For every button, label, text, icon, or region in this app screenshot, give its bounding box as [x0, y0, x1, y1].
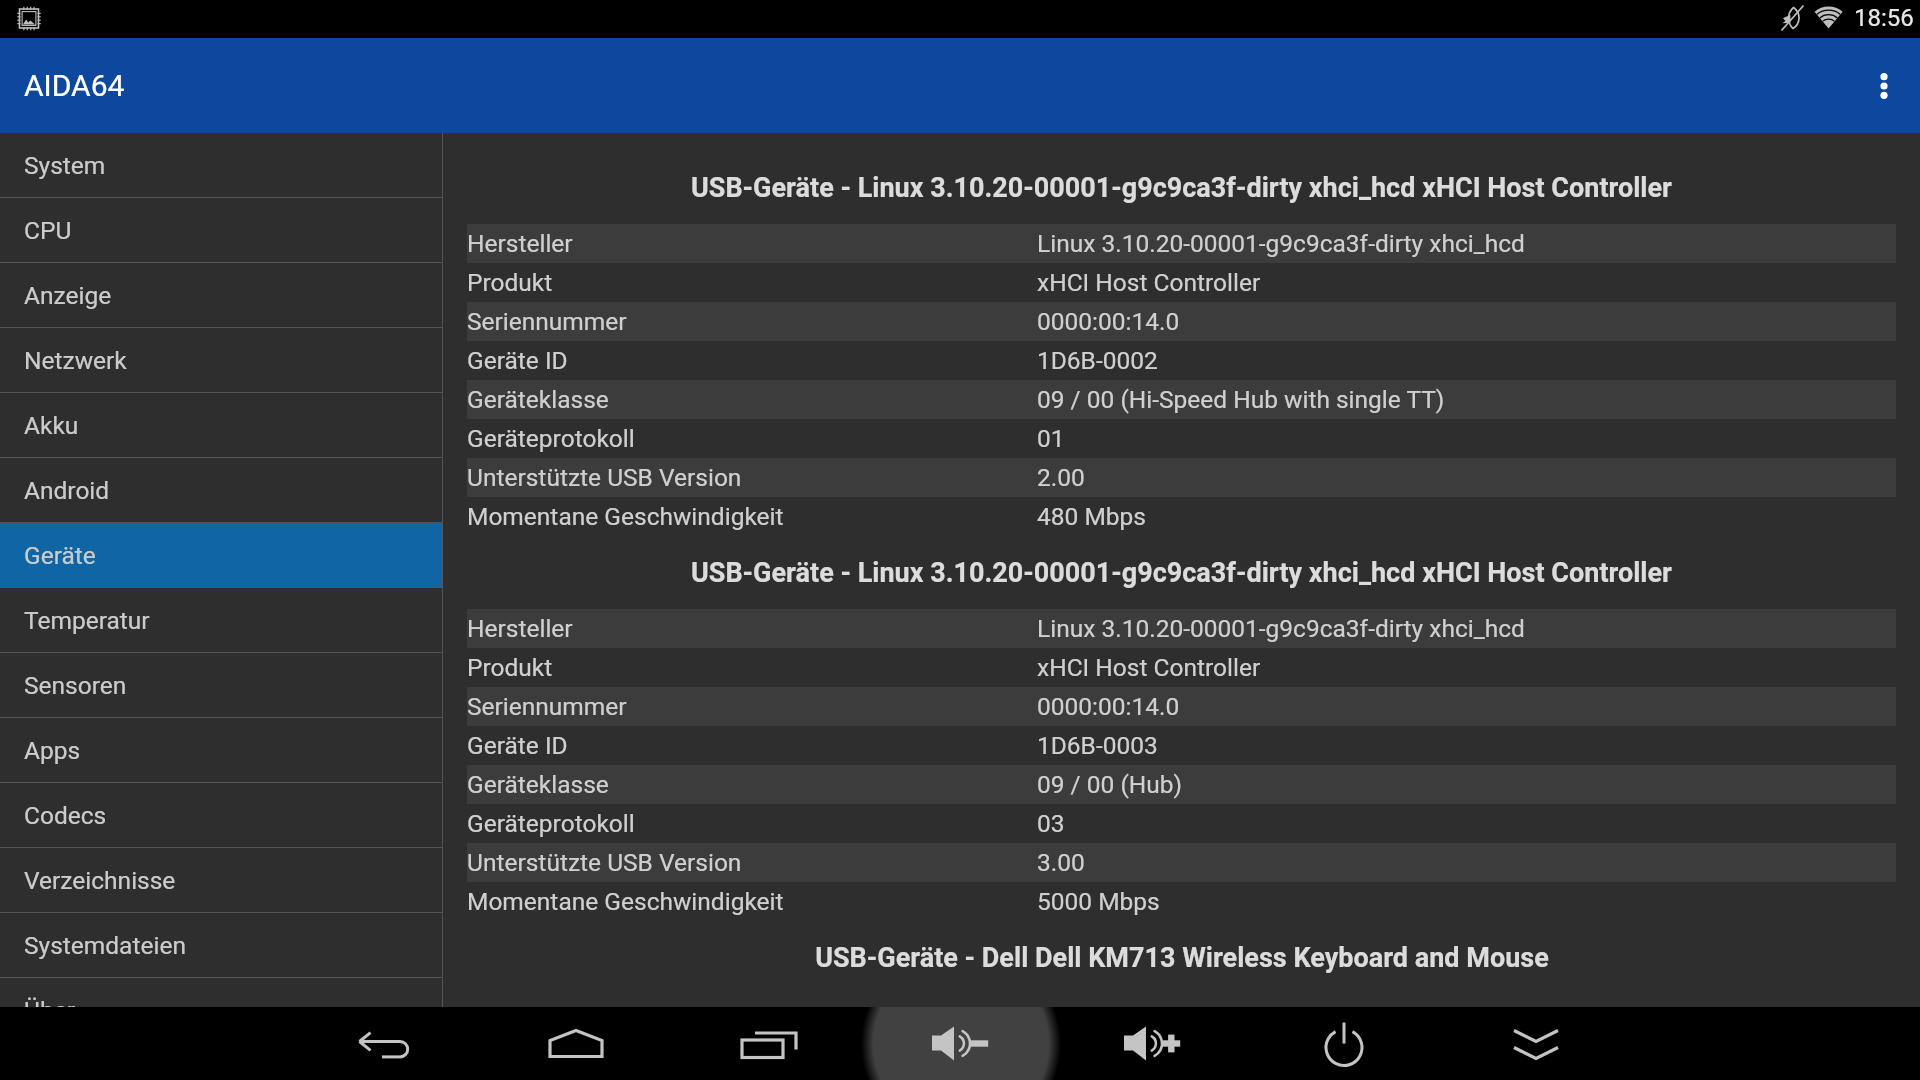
button[interactable]: Sensoren: [0, 653, 442, 718]
staticText: Über: [24, 996, 75, 1007]
button[interactable]: Momentane Geschwindigkeit: [467, 882, 1896, 921]
button[interactable]: Geräteprotokoll: [467, 419, 1896, 458]
button[interactable]: Hide navigation bar: [1440, 1007, 1632, 1080]
staticText: Unterstützte USB Version: [467, 848, 742, 877]
staticText: Apps: [24, 736, 81, 765]
staticText: Systemdateien: [24, 931, 186, 960]
staticText: 18:56: [1854, 4, 1914, 32]
button[interactable]: Geräte: [0, 523, 442, 588]
button[interactable]: Hersteller: [467, 224, 1896, 263]
staticText: Produkt: [467, 268, 553, 297]
button[interactable]: Unterstützte USB Version: [467, 843, 1896, 882]
staticText: 0000:00:14.0: [1037, 692, 1180, 721]
button[interactable]: Apps: [0, 718, 442, 783]
button[interactable]: Systemdateien: [0, 913, 442, 978]
button[interactable]: Android: [0, 458, 442, 523]
button[interactable]: Home: [480, 1007, 672, 1080]
staticText: Sensoren: [24, 671, 127, 700]
staticText: Temperatur: [24, 606, 150, 635]
staticText: USB-Geräte - Linux 3.10.20-00001-g9c9ca3…: [691, 172, 1672, 204]
staticText: Codecs: [24, 801, 107, 830]
staticText: Momentane Geschwindigkeit: [467, 887, 784, 916]
staticText: Geräteklasse: [467, 770, 609, 799]
button[interactable]: Produkt: [467, 648, 1896, 687]
button[interactable]: Temperatur: [0, 588, 442, 653]
staticText: 01: [1037, 424, 1065, 453]
staticText: Produkt: [467, 653, 553, 682]
staticText: Geräte ID: [467, 346, 568, 375]
button[interactable]: Produkt: [467, 263, 1896, 302]
staticText: Unterstützte USB Version: [467, 463, 742, 492]
button[interactable]: System: [0, 133, 442, 198]
button[interactable]: More options: [1848, 38, 1920, 133]
staticText: Hersteller: [467, 614, 573, 643]
staticText: 1D6B-0002: [1037, 346, 1158, 375]
button[interactable]: Volume down: [864, 1007, 1056, 1080]
button[interactable]: Geräteklasse: [467, 380, 1896, 419]
staticText: 03: [1037, 809, 1065, 838]
button[interactable]: Geräte ID: [467, 341, 1896, 380]
staticText: 3.00: [1037, 848, 1085, 877]
button[interactable]: Akku: [0, 393, 442, 458]
button[interactable]: Volume up: [1056, 1007, 1248, 1080]
staticText: 5000 Mbps: [1037, 887, 1160, 916]
button[interactable]: Hersteller: [467, 609, 1896, 648]
button[interactable]: CPU: [0, 198, 442, 263]
staticText: USB-Geräte - Dell Dell KM713 Wireless Ke…: [815, 942, 1549, 974]
button[interactable]: Seriennummer: [467, 687, 1896, 726]
staticText: 0000:00:14.0: [1037, 307, 1180, 336]
staticText: Akku: [24, 411, 79, 440]
staticText: Momentane Geschwindigkeit: [467, 502, 784, 531]
staticText: Anzeige: [24, 281, 112, 310]
button[interactable]: Netzwerk: [0, 328, 442, 393]
staticText: CPU: [24, 216, 72, 245]
button[interactable]: Geräte ID: [467, 726, 1896, 765]
staticText: USB-Geräte - Linux 3.10.20-00001-g9c9ca3…: [691, 557, 1672, 589]
button[interactable]: Über: [0, 978, 442, 1007]
staticText: Android: [24, 476, 110, 505]
staticText: Geräteprotokoll: [467, 424, 635, 453]
button[interactable]: Verzeichnisse: [0, 848, 442, 913]
staticText: Seriennummer: [467, 692, 627, 721]
button[interactable]: Geräteprotokoll: [467, 804, 1896, 843]
staticText: Geräteklasse: [467, 385, 609, 414]
button[interactable]: Momentane Geschwindigkeit: [467, 497, 1896, 536]
button[interactable]: Unterstützte USB Version: [467, 458, 1896, 497]
staticText: 09 / 00 (Hi-Speed Hub with single TT): [1037, 385, 1445, 414]
staticText: Linux 3.10.20-00001-g9c9ca3f-dirty xhci_…: [1037, 614, 1525, 643]
staticText: Geräte: [24, 541, 96, 570]
staticText: AIDA64: [24, 68, 125, 103]
staticText: Geräte ID: [467, 731, 568, 760]
button[interactable]: Geräteklasse: [467, 765, 1896, 804]
staticText: Hersteller: [467, 229, 573, 258]
staticText: Geräteprotokoll: [467, 809, 635, 838]
staticText: Verzeichnisse: [24, 866, 176, 895]
button[interactable]: Recent apps: [672, 1007, 864, 1080]
button[interactable]: Codecs: [0, 783, 442, 848]
button[interactable]: Anzeige: [0, 263, 442, 328]
staticText: Netzwerk: [24, 346, 127, 375]
button[interactable]: Power: [1248, 1007, 1440, 1080]
button[interactable]: Seriennummer: [467, 302, 1896, 341]
staticText: Seriennummer: [467, 307, 627, 336]
staticText: xHCI Host Controller: [1037, 268, 1261, 297]
staticText: 480 Mbps: [1037, 502, 1146, 531]
staticText: Linux 3.10.20-00001-g9c9ca3f-dirty xhci_…: [1037, 229, 1525, 258]
staticText: System: [24, 151, 106, 180]
staticText: xHCI Host Controller: [1037, 653, 1261, 682]
staticText: 1D6B-0003: [1037, 731, 1158, 760]
button[interactable]: Back: [288, 1007, 480, 1080]
staticText: 09 / 00 (Hub): [1037, 770, 1183, 799]
staticText: 2.00: [1037, 463, 1085, 492]
